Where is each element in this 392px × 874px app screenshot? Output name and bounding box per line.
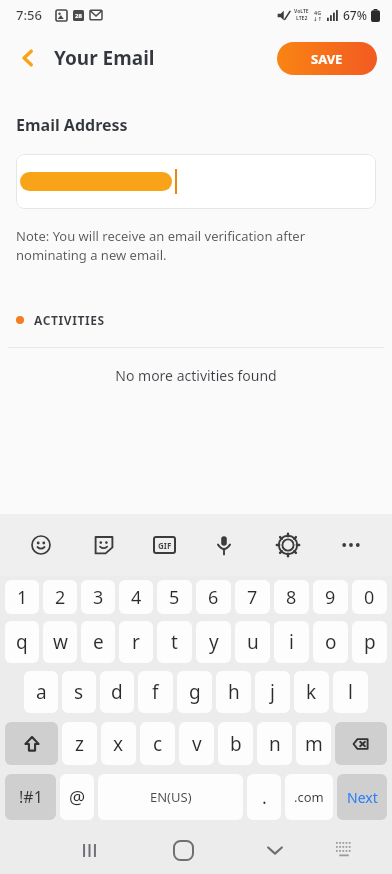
button[interactable]: 2 <box>43 580 77 614</box>
button[interactable]: e <box>81 621 115 663</box>
staticText: No more activities found <box>0 366 392 385</box>
button[interactable]: 0 <box>352 580 387 614</box>
button[interactable]: Emoji <box>26 530 56 560</box>
button[interactable]: 4 <box>119 580 153 614</box>
button[interactable]: Next <box>337 774 387 820</box>
button[interactable]: p <box>352 621 387 663</box>
staticText: o <box>325 629 337 655</box>
button[interactable]: c <box>140 722 175 765</box>
staticText: 6 <box>208 585 219 610</box>
staticText: 0 <box>364 585 375 610</box>
button[interactable]: 5 <box>157 580 192 614</box>
button[interactable]: z <box>62 722 97 765</box>
button[interactable]: i <box>274 621 309 663</box>
button[interactable]: 6 <box>196 580 231 614</box>
staticText: 7 <box>247 585 258 610</box>
button[interactable]: 1 <box>5 580 39 614</box>
staticText: Your Email <box>54 45 155 71</box>
button[interactable]: Stickers <box>89 530 119 560</box>
button[interactable]: . <box>247 774 281 820</box>
staticText: h <box>228 679 240 705</box>
staticText: 3 <box>93 585 104 610</box>
staticText: GIF <box>158 540 172 551</box>
button[interactable]: Recents <box>69 830 109 870</box>
button[interactable]: r <box>119 621 153 663</box>
button[interactable]: q <box>5 621 39 663</box>
staticText: w <box>53 629 68 655</box>
staticText: b <box>230 731 242 757</box>
button[interactable]: y <box>196 621 231 663</box>
button[interactable]: GIF <box>153 536 176 554</box>
staticText: 4 <box>131 585 142 610</box>
staticText: 5 <box>169 585 180 610</box>
staticText: v <box>192 731 202 757</box>
button[interactable]: Keyboard settings <box>273 530 303 560</box>
button[interactable]: d <box>100 671 134 713</box>
button[interactable]: s <box>62 671 96 713</box>
staticText: 4G <box>314 9 322 16</box>
staticText: Next <box>347 788 378 807</box>
staticText: a <box>36 679 47 705</box>
staticText: m <box>305 731 323 757</box>
staticText: n <box>269 731 281 757</box>
button[interactable]: EN(US) <box>98 774 243 820</box>
button[interactable]: o <box>313 621 348 663</box>
staticText: . <box>262 785 267 810</box>
staticText: SAVE <box>311 50 343 68</box>
button[interactable]: h <box>216 671 251 713</box>
staticText: Note: You will receive an email verifica… <box>16 227 376 264</box>
button[interactable]: Home <box>163 830 203 870</box>
button[interactable]: Backspace <box>335 722 387 765</box>
button[interactable]: a <box>24 671 58 713</box>
button[interactable]: More options <box>336 530 366 560</box>
button[interactable]: w <box>43 621 77 663</box>
staticText: z <box>75 731 84 757</box>
button[interactable]: g <box>177 671 212 713</box>
staticText: Email Address <box>16 114 128 136</box>
button[interactable]: t <box>157 621 192 663</box>
staticText: r <box>132 629 140 655</box>
staticText: t <box>171 629 178 655</box>
staticText: VoLTE <box>294 8 309 15</box>
button[interactable]: Back <box>8 38 48 78</box>
button[interactable]: b <box>218 722 253 765</box>
button[interactable]: 8 <box>274 580 309 614</box>
button[interactable]: m <box>296 722 331 765</box>
button[interactable]: x <box>101 722 136 765</box>
staticText: d <box>111 679 123 705</box>
button[interactable]: j <box>255 671 290 713</box>
button[interactable]: Voice input <box>209 530 239 560</box>
button[interactable] <box>16 154 376 209</box>
button[interactable]: Hide keyboard <box>255 830 295 870</box>
button[interactable]: v <box>179 722 214 765</box>
staticText: q <box>16 629 28 655</box>
staticText: k <box>306 679 317 705</box>
button[interactable]: u <box>235 621 270 663</box>
button[interactable]: 9 <box>313 580 348 614</box>
staticText: @ <box>69 785 86 810</box>
staticText: x <box>113 731 124 757</box>
staticText: EN(US) <box>150 788 192 806</box>
button[interactable]: l <box>333 671 368 713</box>
staticText: y <box>209 629 219 655</box>
button[interactable]: !#1 <box>5 774 56 820</box>
button[interactable]: 3 <box>81 580 115 614</box>
button[interactable]: k <box>294 671 329 713</box>
button[interactable]: @ <box>60 774 94 820</box>
button[interactable]: .com <box>285 774 333 820</box>
staticText: c <box>153 731 163 757</box>
button[interactable]: SAVE <box>277 42 377 75</box>
staticText: LTE2 <box>296 15 308 22</box>
staticText: 2 <box>55 585 66 610</box>
staticText: f <box>152 679 159 705</box>
button[interactable]: Shift <box>5 722 58 765</box>
staticText: j <box>270 679 275 705</box>
button[interactable]: 7 <box>235 580 270 614</box>
staticText: l <box>348 679 353 705</box>
button[interactable]: n <box>257 722 292 765</box>
staticText: e <box>93 629 104 655</box>
button[interactable]: Switch keyboard <box>326 832 362 868</box>
button[interactable]: f <box>138 671 173 713</box>
staticText: 1 <box>17 585 28 610</box>
staticText: i <box>289 629 294 655</box>
